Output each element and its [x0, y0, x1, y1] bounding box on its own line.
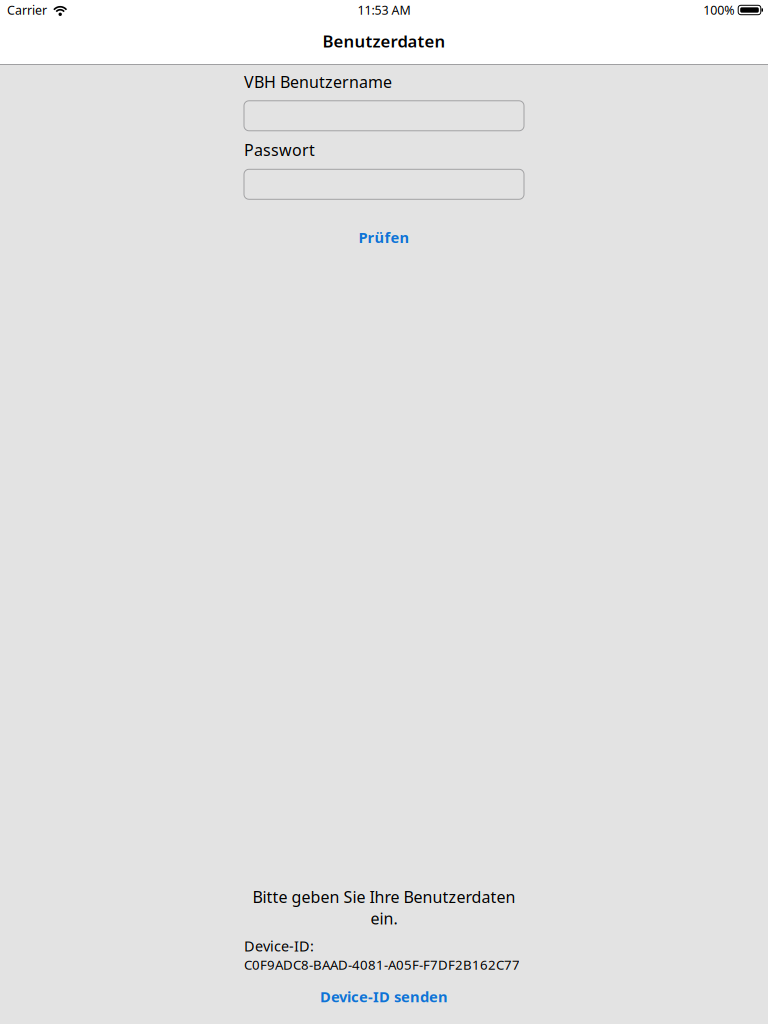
staticText: Benutzerdaten	[322, 30, 445, 52]
staticText: Bitte geben Sie Ihre Benutzerdaten	[252, 886, 515, 908]
button[interactable]: Device-ID senden	[244, 984, 524, 1010]
button[interactable]: VBH Benutzername	[244, 101, 524, 131]
staticText: Passwort	[244, 139, 315, 161]
staticText: ein.	[370, 907, 397, 929]
staticText: 100%	[703, 2, 734, 18]
staticText: VBH Benutzername	[244, 71, 392, 93]
button[interactable]: Prüfen	[244, 223, 524, 251]
staticText: 11:53 AM	[357, 2, 410, 18]
staticText: C0F9ADC8-BAAD-4081-A05F-F7DF2B162C77	[244, 956, 520, 974]
staticText: Carrier	[7, 2, 47, 18]
staticText: Device-ID senden	[320, 987, 448, 1007]
staticText: Device-ID:	[244, 936, 314, 956]
button[interactable]: Passwort	[244, 169, 524, 199]
staticText: Prüfen	[358, 227, 409, 247]
